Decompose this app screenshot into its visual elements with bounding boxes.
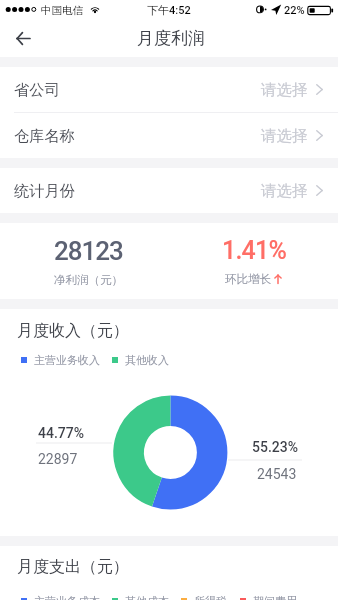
staticText: 统计月份 xyxy=(14,181,75,200)
staticText: 55.23% xyxy=(252,439,299,455)
staticText: 其他收入 xyxy=(125,353,169,367)
staticText: 22% xyxy=(284,4,305,17)
staticText: 净利润（元） xyxy=(54,273,123,287)
staticText: 请选择 xyxy=(261,80,308,100)
staticText: 24543 xyxy=(257,466,297,482)
button[interactable]: 仓库名称 xyxy=(0,113,338,158)
staticText: 主营业务收入 xyxy=(34,353,100,367)
button[interactable]: Back xyxy=(0,20,44,57)
staticText: 省公司 xyxy=(14,80,60,99)
staticText: 请选择 xyxy=(261,181,308,201)
button[interactable]: 统计月份 xyxy=(0,168,338,213)
staticText: 月度收入（元） xyxy=(17,321,129,341)
staticText: 其他成本 xyxy=(125,594,169,600)
staticText: 44.77% xyxy=(38,425,85,441)
staticText: 请选择 xyxy=(261,126,308,146)
staticText: 期间费用 xyxy=(253,594,297,600)
staticText: 所得税 xyxy=(194,594,227,600)
staticText: 中国电信 xyxy=(41,4,83,17)
staticText: 仓库名称 xyxy=(14,126,75,145)
staticText: 22897 xyxy=(38,451,78,467)
staticText: 月度支出（元） xyxy=(17,557,129,577)
staticText: 月度利润 xyxy=(137,28,205,49)
staticText: 28123 xyxy=(54,236,123,266)
staticText: 环比增长 xyxy=(225,272,271,286)
staticText: 下午4:52 xyxy=(147,3,191,17)
staticText: 主营业务成本 xyxy=(34,594,100,600)
button[interactable]: 省公司 xyxy=(0,67,338,112)
staticText: 1.41% xyxy=(222,236,286,265)
